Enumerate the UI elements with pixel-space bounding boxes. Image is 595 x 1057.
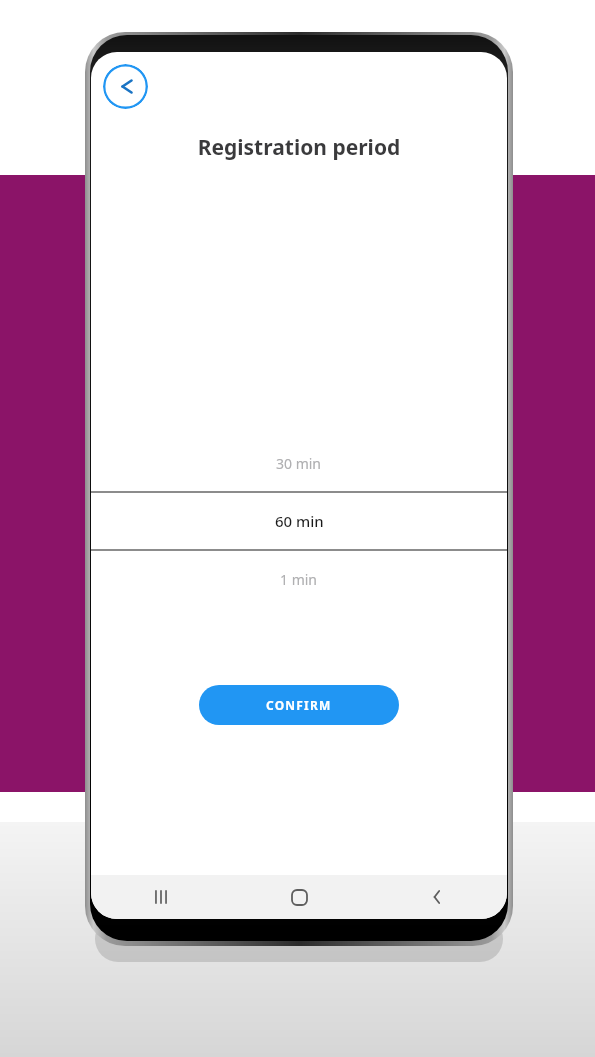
button[interactable]: Back bbox=[103, 64, 148, 109]
staticText: 1 min bbox=[280, 570, 318, 589]
staticText: 30 min bbox=[276, 454, 322, 473]
button[interactable]: Back bbox=[415, 875, 459, 919]
button[interactable]: Recent apps bbox=[139, 875, 183, 919]
staticText: 60 min bbox=[275, 511, 324, 531]
button[interactable]: CONFIRM bbox=[199, 685, 399, 725]
button[interactable]: 1 min bbox=[91, 551, 507, 607]
button[interactable]: Home bbox=[277, 875, 321, 919]
button[interactable]: 30 min bbox=[91, 435, 507, 491]
button[interactable]: 60 min bbox=[91, 493, 507, 549]
staticText: CONFIRM bbox=[266, 697, 332, 713]
staticText: Registration period bbox=[91, 133, 507, 162]
